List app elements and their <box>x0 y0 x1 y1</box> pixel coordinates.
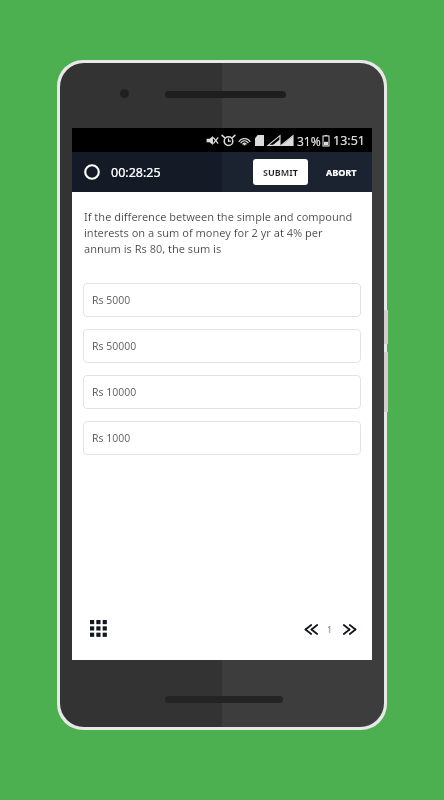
staticText: Rs 5000 <box>92 293 131 307</box>
button[interactable]: Rs 50000 <box>83 329 361 363</box>
button[interactable]: Next question <box>338 618 360 640</box>
staticText: 31% <box>297 133 321 149</box>
button[interactable]: Rs 1000 <box>83 421 361 455</box>
staticText: If the difference between the simple and… <box>84 209 360 256</box>
staticText: 13:51 <box>333 132 365 149</box>
staticText: 00:28:25 <box>111 164 161 181</box>
staticText: Rs 1000 <box>92 431 131 445</box>
button[interactable]: Previous question <box>300 618 322 640</box>
staticText: Rs 50000 <box>92 339 137 353</box>
button[interactable]: Rs 10000 <box>83 375 361 409</box>
button[interactable]: Timer <box>82 162 102 182</box>
staticText: SUBMIT <box>263 166 298 178</box>
button[interactable]: ABORT <box>322 159 361 185</box>
staticText: 1 <box>327 623 333 635</box>
button[interactable]: Rs 5000 <box>83 283 361 317</box>
button[interactable]: SUBMIT <box>253 159 308 185</box>
staticText: ABORT <box>326 166 357 178</box>
button[interactable]: Question grid <box>84 614 114 644</box>
staticText: Rs 10000 <box>92 385 137 399</box>
